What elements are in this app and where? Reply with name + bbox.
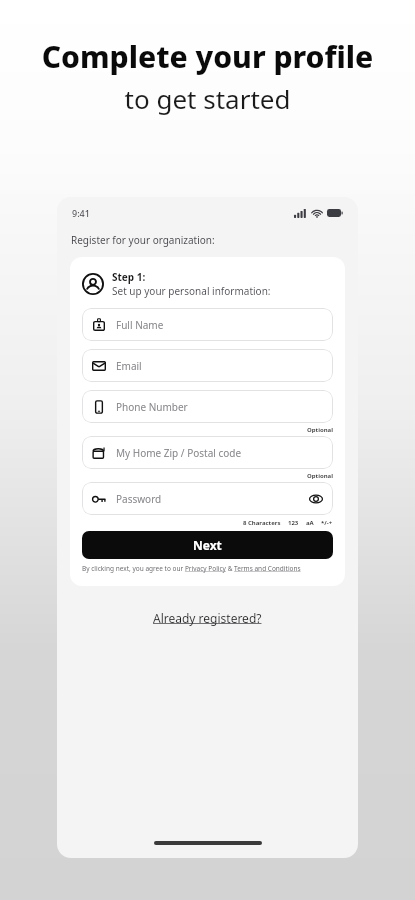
staticText: Set up your personal information: xyxy=(112,284,271,298)
staticText: Full Name xyxy=(116,318,164,332)
staticText: Next xyxy=(193,537,222,553)
staticText: Email xyxy=(116,359,142,373)
staticText: Phone Number xyxy=(116,400,188,414)
button[interactable]: Full Name xyxy=(82,308,333,341)
staticText: By clicking next, you agree to our Priva… xyxy=(82,564,333,573)
staticText: 123 xyxy=(288,519,299,527)
staticText: Register for your organization: xyxy=(71,233,215,247)
staticText: My Home Zip / Postal code xyxy=(116,446,242,460)
staticText: Optional xyxy=(307,472,333,480)
staticText: Step 1: xyxy=(112,270,146,284)
button[interactable]: Password xyxy=(82,482,333,515)
button[interactable]: Already registered? xyxy=(57,610,358,626)
other: Show password xyxy=(309,492,323,506)
staticText: Optional xyxy=(307,426,333,434)
staticText: 9:41 xyxy=(72,207,90,219)
button[interactable]: Next xyxy=(82,531,333,559)
staticText: Already registered? xyxy=(153,610,262,626)
staticText: Complete your profile xyxy=(0,36,415,77)
button[interactable]: My Home Zip / Postal code xyxy=(82,436,333,469)
button[interactable]: Phone Number xyxy=(82,390,333,423)
staticText: aA xyxy=(306,519,314,527)
staticText: 8 Characters xyxy=(243,519,281,527)
staticText: */-+ xyxy=(321,519,333,527)
staticText: to get started xyxy=(0,81,415,116)
button[interactable]: Email xyxy=(82,349,333,382)
staticText: Password xyxy=(116,492,162,506)
